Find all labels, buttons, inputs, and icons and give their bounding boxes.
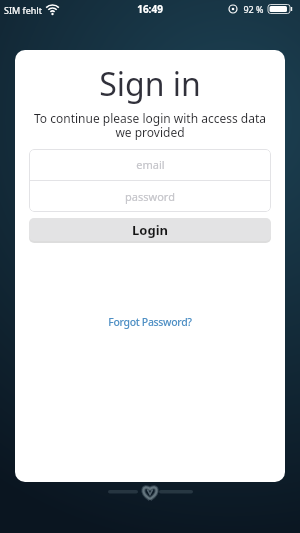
button[interactable]: email	[29, 149, 271, 180]
button[interactable]: Login	[29, 218, 271, 241]
staticText: SIM fehlt	[4, 4, 42, 16]
staticText: password	[125, 189, 175, 204]
staticText: To continue please login with access dat…	[34, 110, 266, 140]
staticText: 92 %	[243, 3, 264, 15]
button[interactable]: password	[29, 181, 271, 212]
staticText: 16:49	[137, 2, 163, 16]
staticText: Forgot Password?	[108, 315, 192, 329]
staticText: Login	[132, 221, 168, 239]
staticText: Sign in	[99, 62, 201, 106]
staticText: email	[136, 157, 165, 172]
button[interactable]: Forgot Password?	[106, 313, 194, 331]
